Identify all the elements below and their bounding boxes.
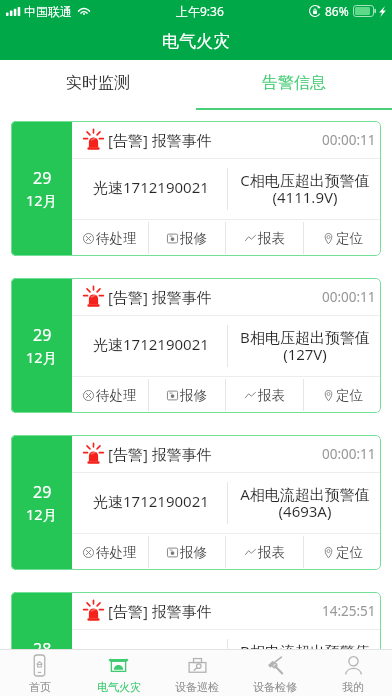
button[interactable]: 我的	[314, 649, 392, 696]
button[interactable]: 29	[11, 278, 381, 413]
staticText: 定位	[336, 230, 363, 247]
staticText: C相电压超出预警值 (4111.9V)	[240, 170, 370, 208]
staticText: 实时监测	[66, 73, 130, 93]
button[interactable]: 设备巡检	[158, 649, 236, 696]
button[interactable]: 告警信息	[196, 60, 392, 110]
staticText: 28	[33, 638, 52, 649]
staticText: 报表	[258, 387, 285, 404]
staticText: 29	[33, 167, 52, 189]
staticText: B相电流超出预警值 (200A)	[240, 641, 370, 649]
staticText: 报修	[180, 230, 207, 247]
staticText: 中国联通	[24, 4, 72, 19]
staticText: 29	[33, 481, 52, 503]
button[interactable]: 报表	[226, 377, 303, 413]
staticText: 00:00:11	[322, 445, 376, 463]
staticText: 12月	[26, 190, 58, 210]
staticText: 设备巡检	[175, 680, 219, 694]
staticText: 待处理	[96, 387, 137, 404]
staticText: 上午9:36	[176, 3, 224, 19]
staticText: [告警] 报警事件	[108, 287, 212, 307]
button[interactable]: 定位	[304, 220, 381, 256]
staticText: 告警信息	[262, 73, 326, 93]
staticText: 光速1712190021	[93, 177, 209, 197]
staticText: 报表	[258, 544, 285, 561]
button[interactable]: 待处理	[72, 534, 148, 570]
staticText: 待处理	[96, 544, 137, 561]
button[interactable]: 首页	[0, 649, 79, 696]
staticText: [告警] 报警事件	[108, 601, 212, 621]
staticText: 待处理	[96, 230, 137, 247]
staticText: 12月	[26, 347, 58, 367]
staticText: 12月	[26, 504, 58, 524]
staticText: 14:25:51	[322, 602, 376, 620]
button[interactable]: 定位	[304, 377, 381, 413]
staticText: 定位	[336, 387, 363, 404]
staticText: 设备检修	[253, 680, 297, 694]
button[interactable]: 待处理	[72, 220, 148, 256]
button[interactable]: 设备检修	[236, 649, 314, 696]
staticText: 我的	[342, 680, 364, 694]
staticText: 定位	[336, 544, 363, 561]
staticText: [告警] 报警事件	[108, 444, 212, 464]
staticText: B相电压超出预警值 (127V)	[240, 327, 370, 365]
staticText: 光速1712190021	[93, 491, 209, 511]
staticText: 电气火灾	[162, 31, 230, 52]
staticText: 电气火灾	[97, 680, 141, 694]
button[interactable]: 29	[11, 435, 381, 570]
staticText: 报修	[180, 544, 207, 561]
staticText: 报修	[180, 387, 207, 404]
staticText: [告警] 报警事件	[108, 130, 212, 150]
button[interactable]: 待处理	[72, 377, 148, 413]
staticText: 29	[33, 324, 52, 346]
button[interactable]: 报表	[226, 220, 303, 256]
button[interactable]: 29	[11, 121, 381, 256]
button[interactable]: 28	[11, 592, 381, 649]
button[interactable]: 实时监测	[0, 60, 196, 110]
staticText: 光速1712190021	[93, 334, 209, 354]
button[interactable]: 电气火灾	[79, 649, 158, 696]
button[interactable]: 报修	[149, 220, 225, 256]
staticText: A相电流超出预警值 (4693A)	[240, 484, 370, 522]
staticText: 首页	[29, 680, 51, 694]
staticText: 00:00:11	[322, 131, 376, 149]
button[interactable]: 报修	[149, 534, 225, 570]
staticText: 报表	[258, 230, 285, 247]
button[interactable]: 报表	[226, 534, 303, 570]
button[interactable]: 定位	[304, 534, 381, 570]
staticText: 86%	[325, 3, 349, 19]
staticText: 00:00:11	[322, 288, 376, 306]
button[interactable]: 报修	[149, 377, 225, 413]
